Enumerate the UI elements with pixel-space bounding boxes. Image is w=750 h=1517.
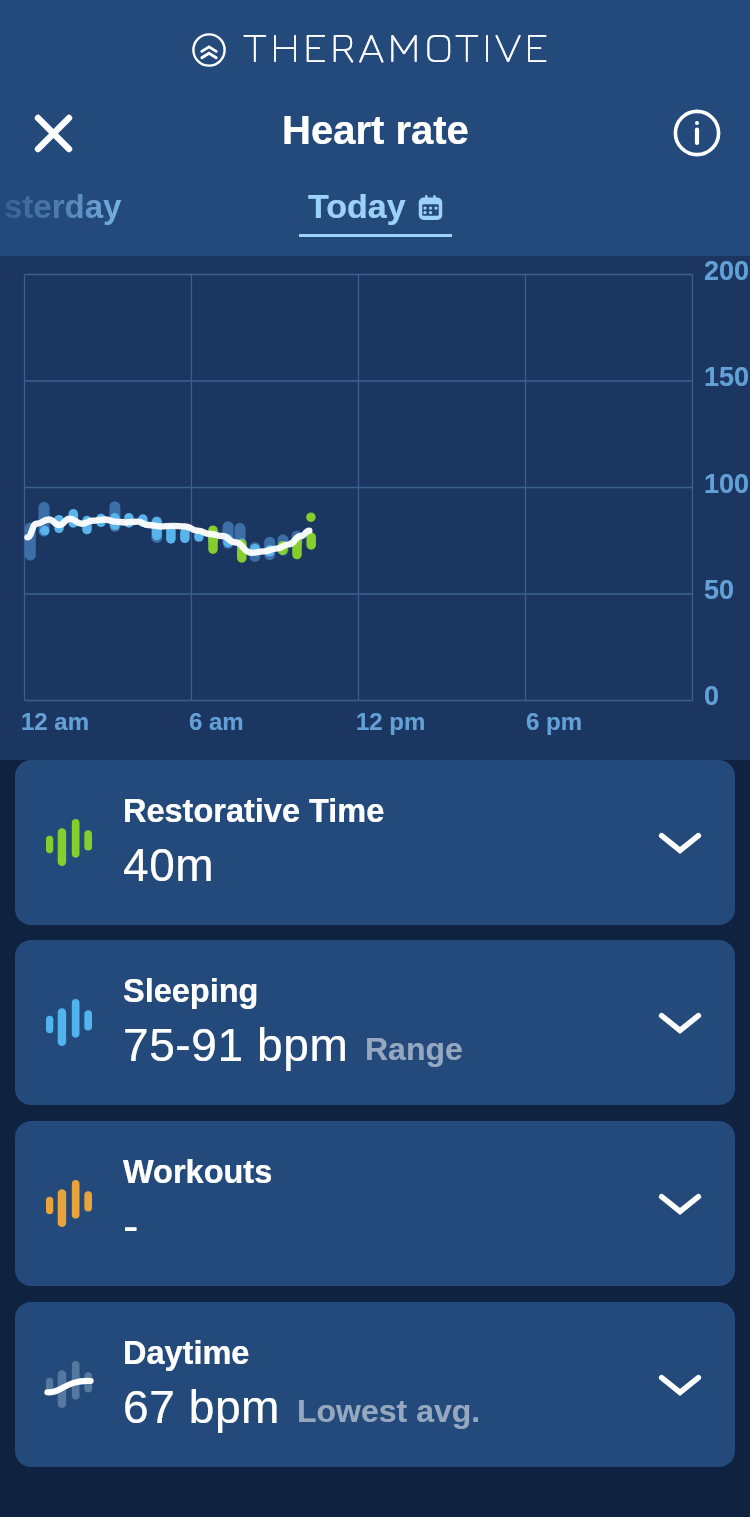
button[interactable]: Information [666, 102, 728, 164]
staticText: 100 [704, 469, 750, 499]
staticText: Today [308, 187, 406, 225]
button[interactable]: Restorative Time [15, 760, 735, 925]
button[interactable]: Workouts [15, 1121, 735, 1286]
staticText: 50 [704, 575, 735, 605]
staticText: - [123, 1200, 139, 1251]
staticText: Daytime [123, 1335, 250, 1371]
button[interactable]: sterday [4, 188, 122, 225]
staticText: Heart rate [282, 108, 469, 153]
staticText: 12 pm [356, 708, 426, 735]
staticText: 40m [123, 839, 215, 890]
button[interactable]: Today [299, 187, 452, 237]
staticText: 6 am [189, 708, 244, 735]
staticText: Restorative Time [123, 793, 385, 829]
staticText: Workouts [123, 1154, 273, 1190]
button[interactable]: Close [23, 103, 84, 164]
staticText: 75-91 bpm [123, 1019, 349, 1070]
staticText: sterday [4, 188, 122, 225]
button[interactable]: Daytime [15, 1302, 735, 1467]
staticText: 0 [704, 681, 720, 711]
button[interactable]: Sleeping [15, 940, 735, 1105]
staticText: 12 am [21, 708, 90, 735]
staticText: THERAMOTIVE [243, 21, 552, 72]
staticText: 6 pm [526, 708, 583, 735]
staticText: 200 [704, 256, 750, 286]
staticText: Sleeping [123, 973, 259, 1009]
staticText: 67 bpm [123, 1381, 281, 1432]
staticText: 150 [704, 362, 750, 392]
staticText: Lowest avg. [297, 1393, 481, 1429]
staticText: Range [365, 1031, 463, 1067]
